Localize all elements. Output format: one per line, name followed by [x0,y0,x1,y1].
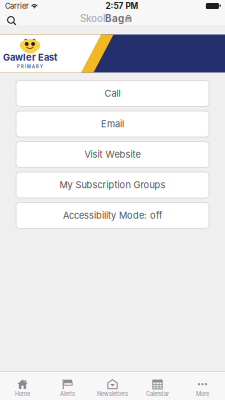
button[interactable]: Search [0,12,22,25]
button[interactable]: Accessibility Mode: off [16,202,209,228]
button[interactable]: Email [16,111,209,137]
button[interactable]: Call [16,80,209,106]
staticText: Gawler East [3,52,57,63]
button[interactable]: Calendar [135,371,180,400]
staticText: More [196,390,209,397]
staticText: Visit Website [84,149,140,160]
staticText: My Subscription Groups [59,179,165,190]
staticText: Accessibility Mode: off [63,210,162,221]
staticText: Newsletters [97,390,128,397]
button[interactable]: Alerts [45,371,90,400]
button[interactable]: Home [0,371,45,400]
button[interactable]: My Subscription Groups [16,172,209,198]
staticText: Carrier [5,1,29,10]
button[interactable]: Newsletters [90,371,135,400]
button[interactable]: More [180,371,225,400]
staticText: Alerts [60,390,75,397]
staticText: Call [104,88,120,99]
staticText: Email [101,118,124,129]
staticText: Bag [105,12,124,24]
staticText: 2:57 PM [105,1,138,11]
staticText: P R I M A R Y [17,64,43,69]
button[interactable]: Visit Website [16,141,209,167]
staticText: Skool [80,12,105,24]
staticText: Calendar [146,390,169,397]
staticText: Home [15,390,30,397]
